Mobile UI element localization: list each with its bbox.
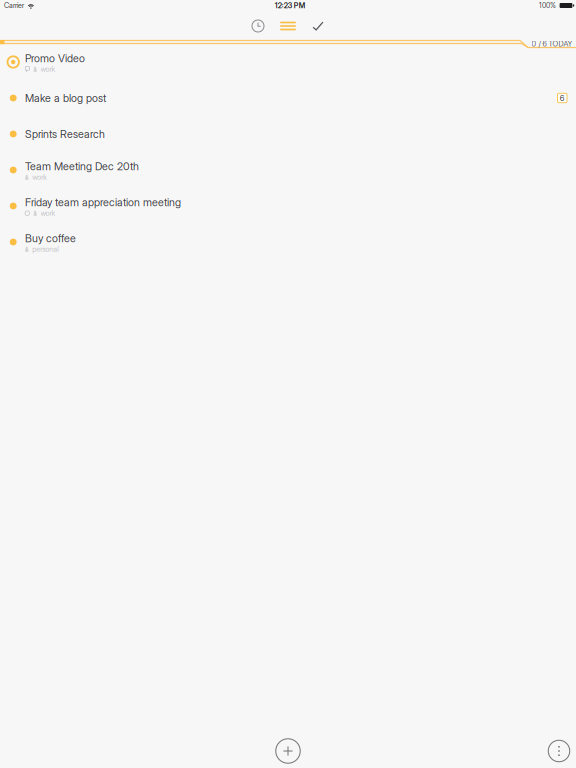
staticText: Carrier — [4, 1, 24, 10]
staticText: 6 — [560, 93, 565, 103]
button[interactable]: Buy coffee — [0, 224, 576, 260]
button[interactable]: More options — [542, 733, 576, 768]
staticText: 12:23 PM — [275, 1, 305, 10]
button[interactable]: Make a blog post — [0, 80, 576, 116]
button[interactable]: Promo Video — [0, 44, 576, 80]
staticText: 0 / 6 TODAY — [531, 39, 572, 48]
staticText: Friday team appreciation meeting — [25, 196, 181, 209]
button[interactable]: Recent — [243, 15, 273, 37]
staticText: Make a blog post — [25, 91, 106, 104]
staticText: Sprints Research — [25, 127, 105, 140]
staticText: work — [41, 209, 56, 218]
button[interactable]: Friday team appreciation meeting — [0, 188, 576, 224]
staticText: 100% — [539, 1, 556, 10]
staticText: personal — [32, 245, 59, 254]
button[interactable]: Lists — [273, 15, 303, 37]
staticText: work — [41, 65, 56, 74]
staticText: Buy coffee — [25, 232, 76, 245]
staticText: Promo Video — [25, 52, 85, 65]
staticText: Team Meeting Dec 20th — [25, 160, 139, 173]
button[interactable]: Sprints Research — [0, 116, 576, 152]
button[interactable]: Team Meeting Dec 20th — [0, 152, 576, 188]
button[interactable]: Add task — [268, 733, 308, 768]
button[interactable]: Completed — [303, 15, 333, 37]
staticText: work — [32, 173, 47, 182]
